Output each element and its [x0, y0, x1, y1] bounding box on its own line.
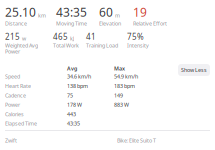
staticText: 41	[86, 31, 96, 42]
staticText: Power	[5, 48, 20, 55]
staticText: 43:35	[67, 120, 80, 127]
staticText: Relative Effort	[133, 20, 167, 27]
staticText: 465	[53, 31, 68, 42]
staticText: Elapsed Time	[5, 120, 37, 127]
staticText: m	[115, 12, 120, 19]
button[interactable]: Show Less	[178, 64, 210, 76]
staticText: Cadence	[5, 92, 26, 99]
staticText: 43:35	[56, 4, 87, 20]
staticText: Power	[5, 101, 20, 108]
staticText: 138 bpm	[67, 82, 88, 89]
staticText: 149	[114, 92, 123, 99]
staticText: Zwift	[5, 137, 17, 144]
staticText: Distance	[5, 20, 27, 27]
staticText: 34.6 km/h	[67, 73, 91, 80]
staticText: Heart Rate	[5, 82, 31, 89]
staticText: 183 bpm	[114, 82, 135, 89]
staticText: Total Work	[53, 42, 79, 49]
staticText: Intensity	[127, 42, 149, 49]
staticText: 25.10	[5, 4, 36, 20]
staticText: Training Load	[86, 42, 118, 49]
staticText: 54.9 km/h	[114, 73, 138, 80]
staticText: Moving Time	[56, 20, 87, 27]
staticText: km	[38, 12, 46, 19]
staticText: Speed	[5, 73, 20, 80]
staticText: Calories	[5, 111, 24, 118]
staticText: w	[22, 35, 26, 42]
staticText: Elevation	[99, 20, 121, 27]
staticText: Weighted Avg	[5, 42, 38, 49]
staticText: 443	[67, 111, 76, 118]
staticText: 215	[5, 31, 20, 42]
staticText: Show Less	[181, 66, 207, 74]
staticText: 60	[99, 4, 113, 20]
staticText: kJ	[70, 35, 74, 42]
staticText: 75	[67, 92, 73, 99]
staticText: 75%	[127, 31, 144, 42]
staticText: 883 W	[114, 101, 129, 108]
staticText: Avg	[67, 65, 77, 72]
staticText: Max	[114, 65, 125, 72]
staticText: 178 W	[67, 101, 82, 108]
staticText: 19	[133, 4, 147, 20]
staticText: Bike: Elite Suito T	[117, 137, 156, 144]
